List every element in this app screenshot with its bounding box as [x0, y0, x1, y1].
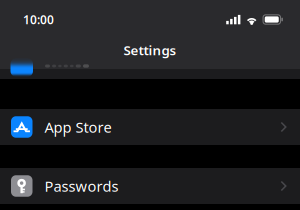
- staticText: Passwords: [44, 176, 118, 196]
- staticText: Settings: [123, 41, 176, 59]
- staticText: App Store: [44, 117, 111, 137]
- button[interactable]: Passwords: [0, 168, 300, 204]
- button[interactable]: App Store: [0, 109, 300, 145]
- staticText: 10:00: [23, 11, 54, 27]
